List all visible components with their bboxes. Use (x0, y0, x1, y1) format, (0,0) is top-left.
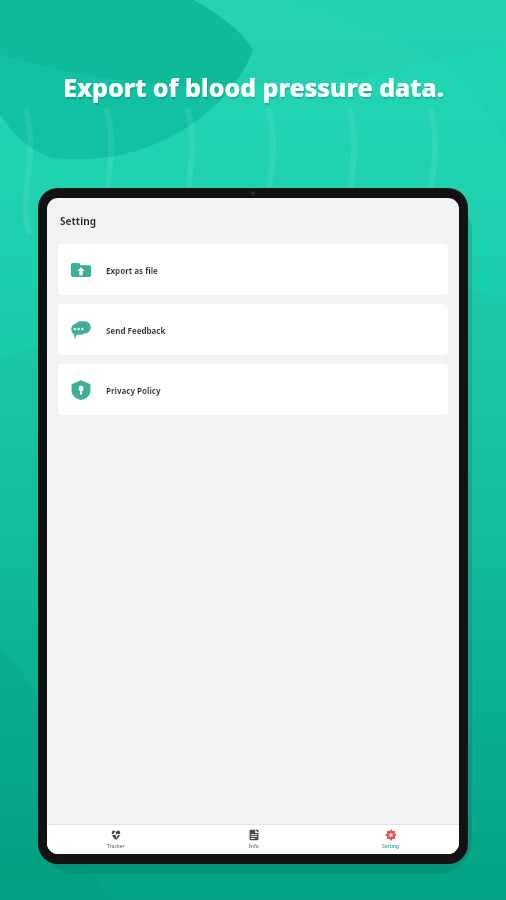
button[interactable]: Tracker (47, 825, 185, 854)
button[interactable]: Setting (322, 825, 459, 854)
staticText: Export as file (106, 265, 158, 276)
staticText: Privacy Policy (106, 385, 161, 396)
staticText: Setting (60, 214, 96, 228)
button[interactable]: Info (185, 825, 322, 854)
staticText: Setting (382, 843, 400, 850)
staticText: Info (249, 843, 259, 850)
staticText: Export of blood pressure data. (63, 70, 444, 104)
button[interactable]: Export as file (58, 244, 448, 295)
button[interactable]: Send Feedback (58, 304, 448, 355)
staticText: Tracker (107, 843, 125, 850)
staticText: Export of blood pressure data. (64, 72, 445, 106)
button[interactable]: Privacy Policy (58, 364, 448, 415)
staticText: Send Feedback (106, 325, 166, 336)
